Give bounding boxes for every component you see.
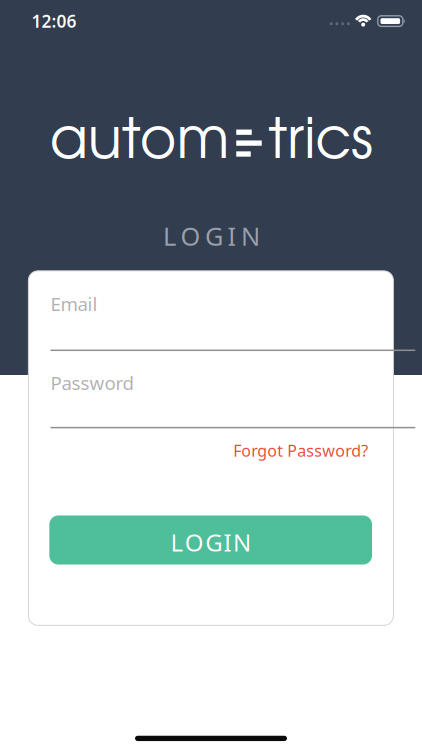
staticText: 12:06 [31, 9, 76, 32]
staticText: L [163, 219, 176, 253]
button[interactable]: Email [50, 292, 415, 351]
staticText: L [170, 526, 183, 558]
staticText: Forgot Password? [233, 440, 368, 461]
staticText: N [241, 219, 260, 253]
staticText: trics [268, 116, 373, 169]
staticText: I [224, 526, 232, 558]
staticText: autom [50, 116, 230, 169]
staticText: I [227, 219, 236, 253]
button[interactable]: L [49, 515, 372, 565]
button[interactable]: Password [50, 370, 415, 429]
staticText: O [180, 219, 200, 253]
staticText: G [205, 219, 223, 253]
staticText: Email [51, 291, 98, 316]
button[interactable]: Forgot Password? [68, 438, 368, 462]
staticText: N [233, 526, 251, 558]
staticText: Password [51, 370, 134, 395]
staticText: O [185, 526, 204, 558]
staticText: G [205, 526, 222, 558]
